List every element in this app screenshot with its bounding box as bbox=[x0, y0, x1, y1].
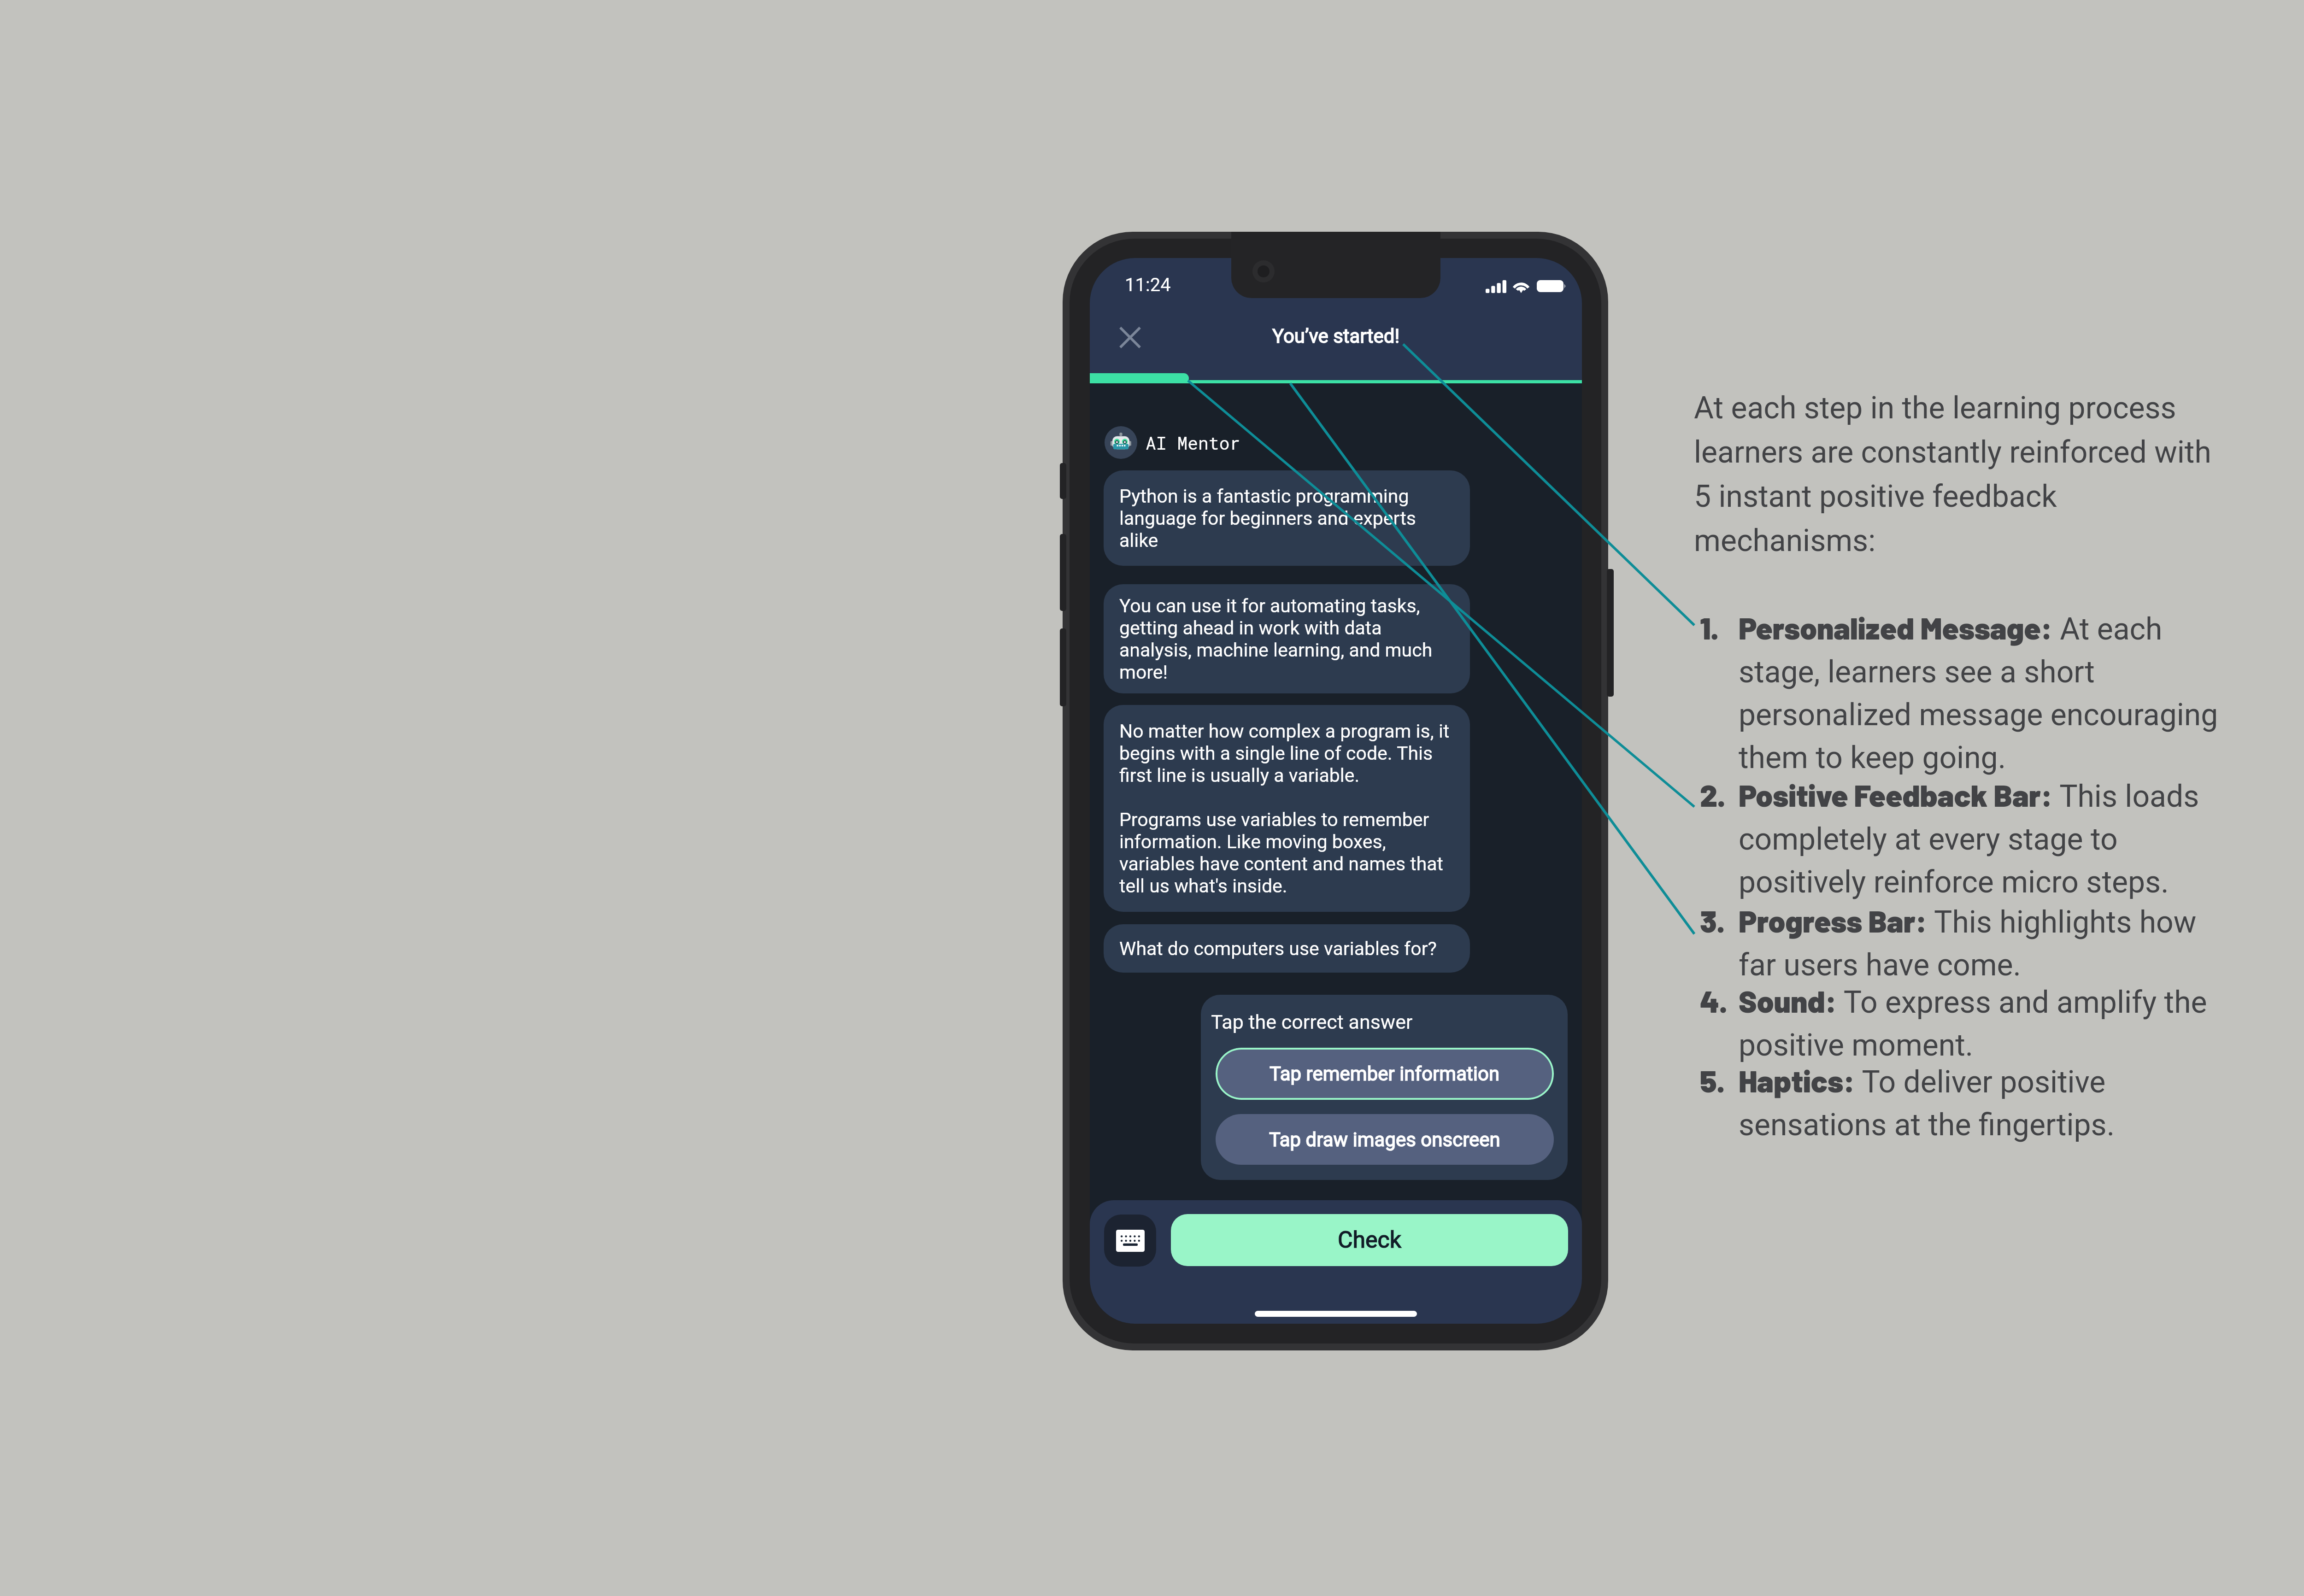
button[interactable]: AI Mentor bbox=[1105, 426, 1240, 459]
button[interactable]: Check bbox=[1171, 1214, 1568, 1266]
staticText: 3. bbox=[1700, 902, 1739, 939]
staticText: At each step in the learning process lea… bbox=[1694, 390, 2225, 558]
staticText: You can use it for automating tasks, get… bbox=[1119, 595, 1454, 683]
button[interactable]: Python is a fantastic programming langua… bbox=[1104, 470, 1470, 566]
staticText: Tap remember information bbox=[1270, 1062, 1500, 1085]
staticText: 4. bbox=[1700, 982, 1739, 1019]
button[interactable]: Keyboard bbox=[1104, 1215, 1156, 1267]
staticText: Programs use variables to remember infor… bbox=[1119, 809, 1454, 897]
button[interactable]: Tap remember information bbox=[1216, 1048, 1554, 1100]
staticText: 11:24 bbox=[1125, 274, 1171, 296]
button[interactable]: What do computers use variables for? bbox=[1104, 924, 1470, 973]
staticText: No matter how complex a program is, it b… bbox=[1119, 720, 1454, 786]
button[interactable]: You can use it for automating tasks, get… bbox=[1104, 584, 1470, 693]
button[interactable]: Tap draw images onscreen bbox=[1216, 1114, 1554, 1165]
staticText: AI Mentor bbox=[1146, 431, 1240, 454]
staticText: Sound: To express and amplify the positi… bbox=[1739, 982, 2221, 1063]
staticText: Check bbox=[1338, 1226, 1402, 1254]
staticText: Positive Feedback Bar: This loads comple… bbox=[1739, 776, 2221, 900]
button[interactable]: Close bbox=[1107, 314, 1153, 360]
button[interactable]: No matter how complex a program is, it b… bbox=[1104, 705, 1470, 912]
staticText: Progress Bar: This highlights how far us… bbox=[1739, 902, 2221, 983]
staticText: Python is a fantastic programming langua… bbox=[1119, 485, 1454, 552]
staticText: 1. bbox=[1700, 609, 1739, 645]
staticText: Personalized Message: At each stage, lea… bbox=[1739, 609, 2221, 775]
staticText: 2. bbox=[1700, 776, 1739, 813]
staticText: You’ve started! bbox=[1272, 325, 1400, 347]
staticText: 5. bbox=[1700, 1062, 1739, 1098]
staticText: Tap the correct answer bbox=[1211, 1010, 1413, 1033]
staticText: Tap draw images onscreen bbox=[1269, 1128, 1500, 1151]
staticText: What do computers use variables for? bbox=[1119, 938, 1437, 960]
staticText: Haptics: To deliver positive sensations … bbox=[1739, 1062, 2221, 1143]
